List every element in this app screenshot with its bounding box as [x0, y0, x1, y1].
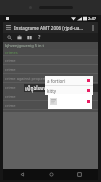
staticText: crime against property [5, 76, 48, 81]
button[interactable]: crime [3, 56, 98, 64]
button[interactable]: crimes [3, 49, 98, 55]
button[interactable]: Home [42, 169, 60, 180]
button[interactable]: crime [3, 65, 98, 73]
button[interactable]: crime [3, 92, 98, 100]
staticText: 2:47 [88, 16, 96, 21]
button[interactable]: crime [3, 101, 98, 109]
staticText: crime [5, 103, 16, 108]
staticText: a fortiori [47, 78, 87, 84]
button[interactable]: crime against property [3, 74, 98, 82]
staticText: ស្ត្រីក្នុងបែបបទ [25, 85, 50, 91]
staticText: crime [5, 67, 16, 72]
button[interactable]: Dictionary [25, 33, 34, 42]
button[interactable]: kjhvenjgvuenig 5 in t [3, 42, 98, 49]
staticText: Instagrame AMT 2006 (rjpd-ua... [14, 25, 88, 31]
button[interactable]: Collections [15, 33, 24, 42]
button[interactable]: Open navigation drawer [3, 22, 14, 33]
staticText: ? [38, 34, 41, 41]
button[interactable]: a fortiori [45, 76, 93, 85]
button[interactable]: Search [5, 33, 14, 42]
staticText: crime [5, 85, 16, 90]
button[interactable]: Recent apps [70, 169, 88, 180]
staticText: crime [5, 58, 16, 63]
button[interactable]: Back [13, 169, 31, 180]
staticText: crimes [5, 50, 18, 55]
staticText: kjhvenjgvuenig 5 in t [5, 43, 44, 48]
button[interactable]: More options [88, 23, 98, 33]
staticText: crime [5, 94, 16, 99]
button[interactable] [48, 94, 92, 109]
button[interactable]: kitty [45, 86, 93, 95]
button[interactable]: Help [35, 33, 44, 42]
staticText: kitty [47, 88, 87, 94]
button[interactable]: crime [3, 83, 98, 92]
